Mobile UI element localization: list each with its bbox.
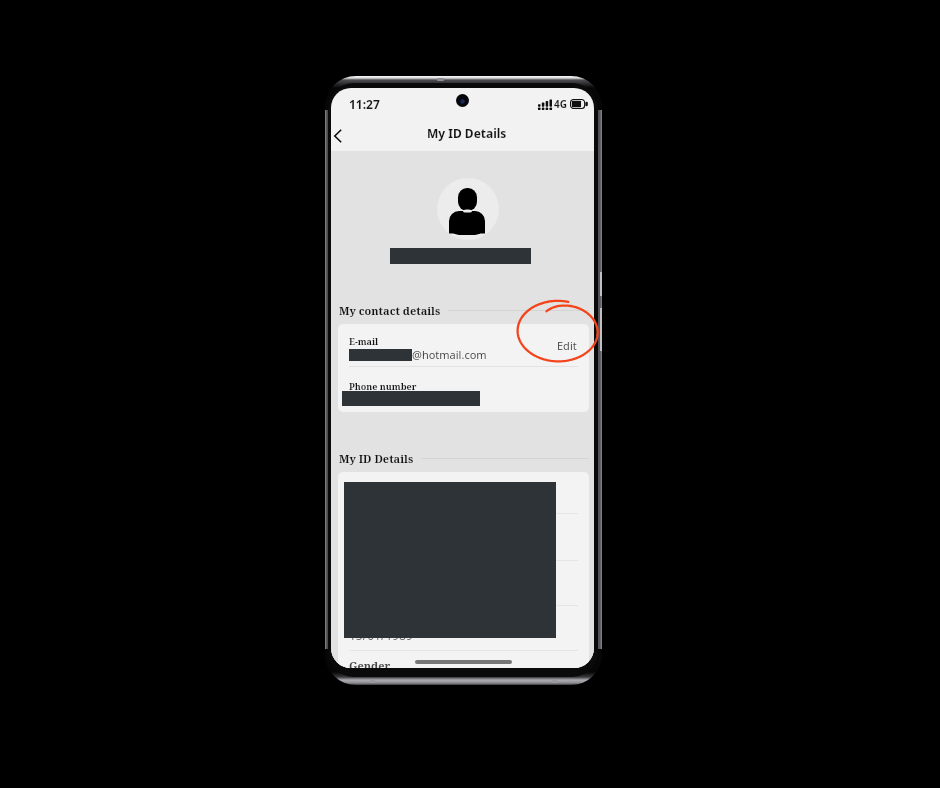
staticText: Phone number — [349, 380, 417, 392]
staticText: My ID Details — [339, 451, 414, 466]
staticText: E-mail — [349, 335, 379, 347]
staticText: @hotmail.com — [412, 347, 487, 362]
staticText: 15/01/1989 — [349, 627, 413, 643]
staticText: My ID Details — [427, 125, 507, 141]
button[interactable]: Edit — [550, 333, 584, 358]
staticText: Edit — [557, 338, 577, 353]
staticText: 4G — [554, 97, 567, 111]
button[interactable]: Back — [331, 122, 350, 149]
staticText: Gender — [349, 658, 391, 668]
staticText: 11:27 — [349, 96, 380, 112]
staticText: My contact details — [339, 303, 441, 318]
